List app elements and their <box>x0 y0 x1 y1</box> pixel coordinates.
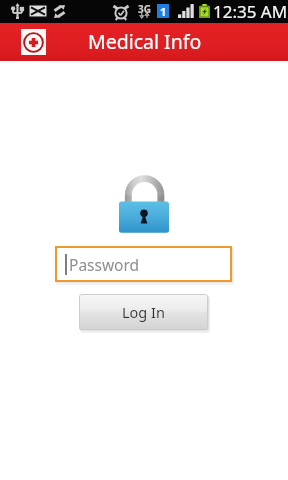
staticText: Password <box>69 254 140 275</box>
button[interactable]: App icon <box>21 29 46 55</box>
staticText: 12:35 AM <box>213 0 288 23</box>
staticText: Log In <box>122 302 165 322</box>
staticText: 3G <box>138 2 151 16</box>
button[interactable]: Log In <box>79 294 208 330</box>
staticText: 1 <box>160 4 167 18</box>
staticText: Medical Info <box>88 28 202 55</box>
button[interactable]: Password <box>55 246 232 282</box>
